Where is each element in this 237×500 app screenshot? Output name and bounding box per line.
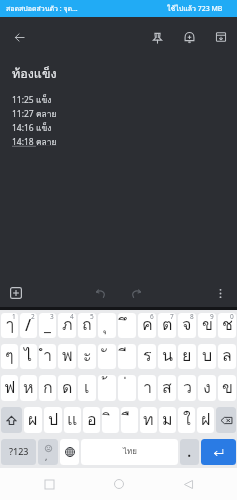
button[interactable]: ะ <box>78 344 96 369</box>
staticText: ช <box>222 313 233 337</box>
staticText: า <box>143 375 152 400</box>
button[interactable]: ด <box>58 375 76 401</box>
button[interactable]: ึ <box>118 313 136 338</box>
button[interactable]: ค <box>138 313 156 338</box>
staticText: ไทย <box>123 445 137 458</box>
button[interactable]: ม <box>159 407 176 433</box>
button[interactable]: _ <box>39 313 56 338</box>
button[interactable]: ำ <box>39 344 56 369</box>
button[interactable]: ?123 <box>1 439 36 465</box>
staticText: ำ <box>43 344 52 368</box>
staticText: ล <box>222 344 232 368</box>
button[interactable]: น <box>158 344 176 369</box>
button[interactable]: ว <box>178 375 196 401</box>
button[interactable]: แ <box>64 407 81 433</box>
staticText: . <box>187 440 192 462</box>
staticText: ข <box>222 375 233 400</box>
button[interactable]: ฟ <box>1 375 18 401</box>
staticText: ใช้ไปแล้ว 723 MB <box>167 3 223 14</box>
button[interactable]: Back <box>3 21 35 53</box>
staticText: สอดสปอดส่วนตัว : จุด... <box>6 3 78 14</box>
staticText: อ <box>87 407 97 432</box>
button[interactable]: ป <box>44 407 62 433</box>
staticText: ย <box>182 344 192 368</box>
staticText: 5 <box>90 313 94 321</box>
button[interactable]: ฝ <box>197 407 214 433</box>
button[interactable]: ส <box>158 375 176 401</box>
staticText: 1 <box>12 313 16 321</box>
button[interactable]: ห <box>20 375 37 401</box>
button[interactable]: ่ <box>118 375 136 401</box>
button[interactable]: า <box>138 375 156 401</box>
button[interactable]: ร <box>138 344 156 369</box>
button[interactable]: ล <box>218 344 236 369</box>
staticText: ใ <box>183 407 191 432</box>
button[interactable]: ใ <box>178 407 195 433</box>
staticText: 6 <box>150 313 154 321</box>
staticText: พ <box>62 344 73 368</box>
staticText: ม <box>162 407 173 432</box>
button[interactable]: ๅ <box>1 313 18 338</box>
button[interactable]: อ <box>83 407 100 433</box>
button[interactable]: / <box>20 313 37 338</box>
button[interactable]: พ <box>58 344 76 369</box>
staticText: จ <box>182 313 192 337</box>
button[interactable]: Add <box>3 280 29 306</box>
button[interactable]: ไ <box>20 344 37 369</box>
button[interactable]: Undo <box>87 280 113 306</box>
button[interactable]: emoji <box>38 439 58 465</box>
button[interactable]: ี <box>118 344 136 369</box>
button[interactable]: เ <box>78 375 96 401</box>
staticText: ท้องแข็ง <box>12 64 57 84</box>
button[interactable]: บ <box>198 344 216 369</box>
button[interactable]: . <box>180 439 199 465</box>
button[interactable]: del <box>216 407 236 433</box>
button[interactable]: Pin <box>141 21 173 53</box>
button[interactable]: ผ <box>24 407 42 433</box>
staticText: เ <box>84 375 90 400</box>
button[interactable]: enter <box>201 439 236 465</box>
staticText: 11:27 คลาย <box>12 107 57 121</box>
button[interactable]: ้ <box>98 375 116 401</box>
button[interactable]: ถ <box>78 313 96 338</box>
staticText: ะ <box>83 344 92 368</box>
button[interactable]: ั <box>98 344 116 369</box>
staticText: ฝ <box>201 407 211 432</box>
button[interactable]: ภ <box>58 313 76 338</box>
button[interactable]: Archive <box>205 21 237 53</box>
button[interactable]: ก <box>39 375 56 401</box>
staticText: 7 <box>170 313 174 321</box>
staticText: ส <box>162 375 172 400</box>
button[interactable]: จ <box>178 313 196 338</box>
staticText: 14:18 คลาย <box>12 135 57 149</box>
button[interactable]: ต <box>158 313 176 338</box>
button[interactable]: ท <box>140 407 157 433</box>
staticText: 11:25 แข็ง <box>12 93 52 107</box>
button[interactable]: ิ <box>102 407 119 433</box>
staticText: ไ <box>24 344 33 368</box>
button[interactable]: ข <box>198 313 216 338</box>
staticText: ๅ <box>6 313 14 337</box>
button[interactable]: Redo <box>123 280 149 306</box>
staticText: ต <box>162 313 173 337</box>
button[interactable]: ข <box>218 375 236 401</box>
button[interactable]: Home <box>99 468 139 500</box>
button[interactable]: Recent apps <box>29 468 69 500</box>
button[interactable]: globe <box>60 439 79 465</box>
button[interactable]: shift <box>1 407 22 433</box>
button[interactable]: ย <box>178 344 196 369</box>
button[interactable]: ช <box>218 313 236 338</box>
staticText: ว <box>183 375 192 400</box>
button[interactable]: ไทย <box>81 439 178 465</box>
button[interactable]: ง <box>198 375 216 401</box>
staticText: บ <box>202 344 213 368</box>
button[interactable]: ุ <box>98 313 116 338</box>
button[interactable]: More options <box>207 280 233 306</box>
staticText: 0 <box>230 313 234 321</box>
staticText: น <box>162 344 173 368</box>
button[interactable]: ๆ <box>1 344 18 369</box>
staticText: ถ <box>82 313 92 337</box>
button[interactable]: ื <box>121 407 138 433</box>
button[interactable]: Reminder <box>173 21 205 53</box>
button[interactable]: Back <box>168 468 208 500</box>
